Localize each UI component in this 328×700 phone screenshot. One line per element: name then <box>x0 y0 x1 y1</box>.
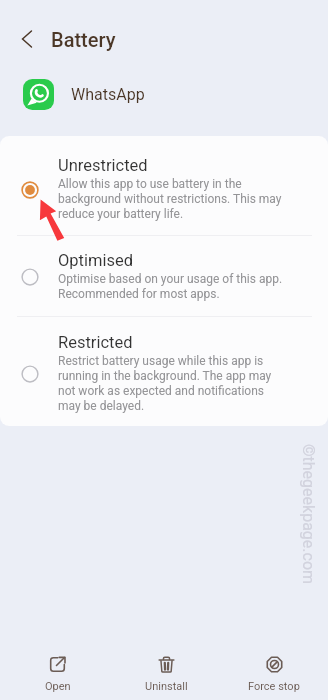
staticText: Unrestricted <box>58 156 148 175</box>
staticText: Battery <box>51 28 116 51</box>
button[interactable]: Open <box>3 656 112 700</box>
staticText: Force stop <box>248 680 300 693</box>
button[interactable]: Unrestricted <box>0 136 328 235</box>
staticText: Optimised <box>58 251 134 270</box>
button[interactable]: Back <box>9 21 45 57</box>
staticText: Open <box>45 680 71 693</box>
button[interactable]: WhatsApp <box>0 71 328 117</box>
staticText: Restricted <box>58 333 133 352</box>
staticText: Uninstall <box>145 680 188 693</box>
staticText: Allow this app to use battery in the bac… <box>58 177 286 222</box>
staticText: Restrict battery usage while this app is… <box>58 354 286 414</box>
staticText: Optimise based on your usage of this app… <box>58 272 286 302</box>
button[interactable]: Uninstall <box>112 656 220 700</box>
button[interactable]: Restricted <box>0 317 328 426</box>
button[interactable]: Optimised <box>0 236 328 316</box>
staticText: WhatsApp <box>71 85 145 104</box>
button[interactable]: Force stop <box>220 656 328 700</box>
